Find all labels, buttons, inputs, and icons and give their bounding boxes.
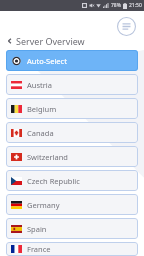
button[interactable]: Czech Republic: [6, 170, 138, 191]
button[interactable]: Germany: [6, 194, 138, 215]
button[interactable]: Server Overview: [6, 35, 85, 47]
staticText: France: [27, 244, 51, 254]
staticText: Canada: [27, 128, 54, 138]
button[interactable]: Spain: [6, 218, 138, 239]
staticText: Belgium: [27, 104, 57, 114]
button[interactable]: Auto-Select: [6, 50, 138, 71]
button[interactable]: Server list menu: [115, 15, 137, 37]
button[interactable]: Canada: [6, 122, 138, 143]
button[interactable]: Switzerland: [6, 146, 138, 167]
button[interactable]: France: [6, 242, 138, 256]
button[interactable]: Austria: [6, 74, 138, 95]
staticText: Auto-Select: [27, 56, 67, 66]
staticText: Switzerland: [27, 152, 68, 162]
staticText: Spain: [27, 224, 47, 234]
staticText: Czech Republic: [27, 176, 80, 186]
staticText: Austria: [27, 80, 52, 90]
staticText: Server Overview: [16, 35, 85, 47]
staticText: 78%: [111, 2, 121, 9]
staticText: 21:50: [129, 2, 142, 9]
staticText: Germany: [27, 200, 60, 210]
button[interactable]: Belgium: [6, 98, 138, 119]
